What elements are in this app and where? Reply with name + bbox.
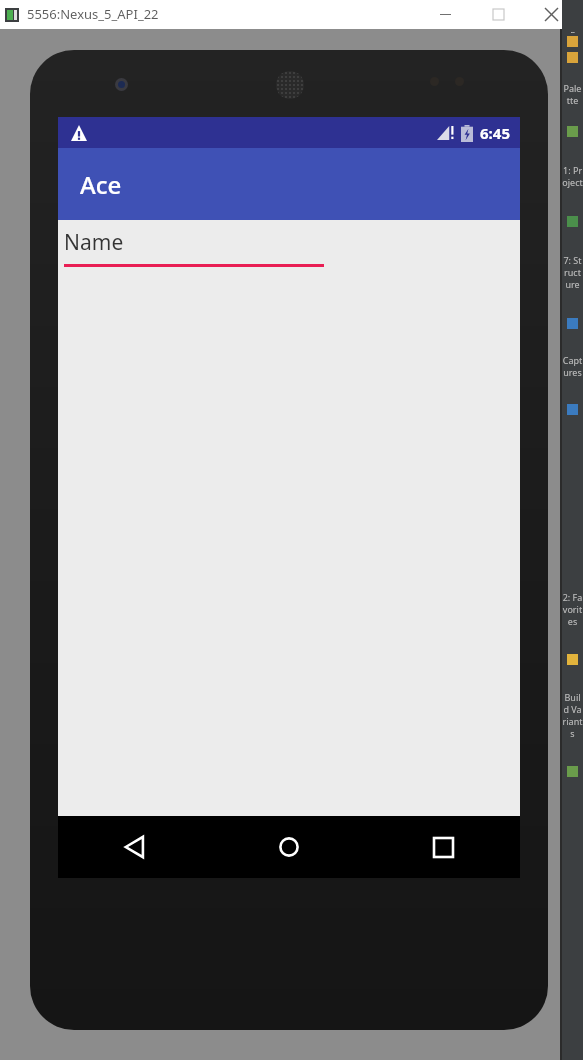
button[interactable]: Back	[58, 816, 212, 878]
staticText: 1: Project	[562, 164, 583, 188]
staticText: 6:45	[480, 123, 510, 143]
staticText: Build Variants	[562, 691, 583, 739]
staticText: 7: Structure	[562, 254, 583, 290]
button[interactable]: Recent apps	[366, 816, 520, 878]
button[interactable]: Home	[212, 816, 366, 878]
button[interactable]: 7: Structure	[562, 229, 583, 315]
button[interactable]	[562, 33, 583, 49]
button[interactable]: 1: Project	[562, 139, 583, 213]
button[interactable]	[562, 123, 583, 139]
button[interactable]: Minimize	[425, 0, 465, 29]
button[interactable]: Maximize	[478, 0, 518, 29]
staticText: Palette	[562, 82, 583, 106]
button[interactable]	[562, 315, 583, 331]
button[interactable]	[562, 401, 583, 417]
button[interactable]: Captures	[562, 331, 583, 401]
button[interactable]	[562, 763, 583, 779]
staticText: 2: Favorites	[562, 591, 583, 627]
button[interactable]	[562, 213, 583, 229]
button[interactable]: Build Variants	[562, 667, 583, 763]
button[interactable]: Name	[64, 228, 324, 267]
button[interactable]: P	[562, 29, 583, 33]
staticText: 5556:Nexus_5_API_22	[27, 5, 159, 23]
button[interactable]	[562, 49, 583, 65]
staticText: Name	[64, 228, 124, 257]
staticText: P	[570, 29, 576, 33]
staticText: Captures	[562, 354, 583, 378]
button[interactable]: Palette	[562, 65, 583, 123]
button[interactable]: Close	[531, 0, 571, 29]
staticText: Ace	[80, 168, 122, 201]
button[interactable]	[562, 651, 583, 667]
button[interactable]: 2: Favorites	[562, 567, 583, 651]
